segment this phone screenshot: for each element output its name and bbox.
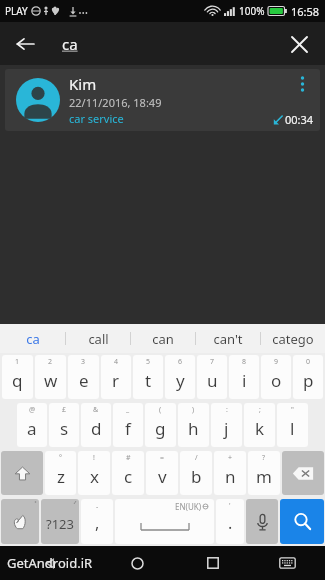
button[interactable]: ( (145, 403, 176, 447)
button[interactable]: ) (178, 403, 209, 447)
staticText: 00:34 (285, 112, 314, 127)
staticText: Kim (69, 74, 97, 94)
staticText: catego (272, 330, 314, 348)
staticText: 16:58 (291, 4, 320, 19)
button[interactable]: : (211, 403, 242, 447)
button[interactable]: 8 (229, 355, 259, 399)
staticText: : (226, 405, 228, 415)
staticText: 4 (114, 357, 119, 367)
button[interactable]: Space (115, 499, 214, 544)
staticText: can (152, 330, 174, 348)
button[interactable]: + (214, 451, 246, 495)
button[interactable]: 6 (165, 355, 195, 399)
staticText: 9 (274, 357, 279, 367)
button[interactable]: catego (261, 324, 325, 353)
staticText: & (93, 405, 99, 415)
button[interactable]: - (81, 499, 113, 544)
staticText: 5 (146, 357, 151, 367)
staticText: ?123 (46, 515, 74, 533)
button[interactable]: can (131, 324, 195, 353)
button[interactable]: ? (248, 451, 280, 495)
staticText: / (195, 453, 198, 463)
staticText: v (158, 465, 167, 488)
staticText: h (188, 417, 199, 440)
button[interactable]: call (66, 324, 130, 353)
staticText: 7 (210, 357, 215, 367)
button[interactable]: Kim (5, 69, 320, 131)
button[interactable]: ' (216, 499, 244, 544)
staticText: 8 (242, 357, 247, 367)
staticText: 1 (15, 357, 20, 367)
staticText: l (290, 417, 295, 440)
button[interactable]: Search (280, 499, 324, 544)
staticText: 3 (81, 357, 86, 367)
button[interactable]: & (81, 403, 111, 447)
staticText: c (124, 465, 133, 488)
button[interactable]: ca (62, 27, 252, 61)
button[interactable]: 0 (293, 355, 323, 399)
button[interactable]: ?123 (41, 499, 79, 544)
staticText: ) (192, 405, 195, 415)
button[interactable]: Shift (1, 451, 43, 495)
staticText: call (88, 330, 109, 348)
staticText: f (125, 417, 131, 440)
button[interactable]: 7 (197, 355, 227, 399)
button[interactable]: £ (49, 403, 79, 447)
button[interactable]: Clear search (279, 24, 319, 64)
staticText: ! (93, 453, 95, 463)
staticText: can't (213, 330, 243, 348)
button[interactable]: Home (100, 546, 175, 580)
button[interactable]: 4 (101, 355, 131, 399)
staticText: b (191, 465, 202, 488)
staticText: g (155, 417, 166, 440)
button[interactable]: Voice input (246, 499, 278, 544)
staticText: _ (126, 405, 130, 415)
staticText: GetAndroid.iR (7, 554, 93, 572)
button[interactable]: Handwriting input (1, 499, 39, 544)
staticText: = (160, 453, 165, 463)
staticText: ( (159, 405, 162, 415)
staticText: + (228, 453, 233, 463)
button[interactable]: 1 (2, 355, 33, 399)
staticText: o (271, 369, 282, 392)
button[interactable]: 3 (68, 355, 99, 399)
staticText: EN(UK) (175, 501, 202, 512)
staticText: ca (26, 330, 40, 348)
button[interactable]: 5 (133, 355, 163, 399)
button[interactable]: ! (78, 451, 110, 495)
button[interactable]: @ (17, 403, 47, 447)
button[interactable]: ; (244, 403, 275, 447)
staticText: u (207, 369, 218, 392)
button[interactable]: Backspace (282, 451, 324, 495)
button[interactable]: = (146, 451, 178, 495)
button[interactable]: ca (0, 324, 65, 353)
staticText: j (224, 417, 229, 440)
button[interactable]: ° (45, 451, 76, 495)
staticText: 2 (48, 357, 53, 367)
button[interactable]: Back (5, 24, 45, 64)
button[interactable]: 9 (261, 355, 291, 399)
staticText: x (90, 465, 99, 488)
button[interactable]: Recent apps (175, 546, 250, 580)
staticText: 0 (306, 357, 311, 367)
staticText: £ (62, 405, 67, 415)
button[interactable]: # (112, 451, 144, 495)
staticText: k (255, 417, 265, 440)
staticText: PLAY (5, 4, 28, 18)
button[interactable]: 2 (35, 355, 66, 399)
staticText: d (91, 417, 102, 440)
staticText: n (225, 465, 236, 488)
button[interactable]: can't (196, 324, 260, 353)
button[interactable]: Hide keyboard (250, 546, 325, 580)
button[interactable]: " (277, 403, 308, 447)
staticText: , (95, 512, 100, 534)
staticText: z (57, 465, 65, 488)
button[interactable]: _ (113, 403, 143, 447)
staticText: ' (229, 501, 231, 511)
staticText: 100% (239, 4, 265, 18)
button[interactable]: / (180, 451, 212, 495)
staticText: - (96, 502, 99, 512)
staticText: . (228, 512, 233, 534)
button[interactable]: Back (0, 546, 100, 580)
button[interactable]: More options (291, 72, 313, 94)
